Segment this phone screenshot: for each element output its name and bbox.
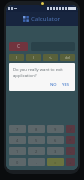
button[interactable]: 0 (9, 158, 26, 166)
staticText: C (17, 43, 21, 50)
button[interactable]: 3 (47, 147, 64, 155)
button[interactable]: 9 (47, 125, 64, 133)
staticText: Do you really want to exit application? (13, 67, 72, 79)
button[interactable]: YES (60, 81, 72, 89)
button[interactable]: 2 (28, 147, 45, 155)
button[interactable]: 4 (9, 136, 26, 144)
staticText: 9 (54, 127, 57, 132)
button[interactable]: 8 (28, 125, 45, 133)
staticText: <- (49, 55, 53, 60)
staticText: YES (62, 82, 70, 88)
staticText: 7 (16, 127, 19, 132)
button[interactable]: NO (48, 81, 59, 89)
staticText: 0 (16, 160, 19, 165)
staticText: NO (50, 82, 57, 88)
staticText: 8 (35, 127, 38, 132)
button[interactable]: <- (43, 54, 58, 61)
staticText: 2 (35, 149, 38, 154)
staticText: + (69, 160, 72, 165)
staticText: 1 (16, 149, 19, 154)
staticText: ( (16, 55, 18, 60)
button[interactable]: ) (26, 54, 41, 61)
button[interactable]: 6 (47, 136, 64, 144)
staticText: 4 (16, 138, 19, 143)
staticText: 6 (54, 138, 57, 143)
button[interactable]: ( (9, 54, 24, 61)
button[interactable]: del (60, 54, 75, 61)
staticText: ) (33, 55, 35, 60)
staticText: / (70, 127, 72, 132)
staticText: del (65, 55, 71, 60)
staticText: = (54, 160, 57, 165)
staticText: * (69, 138, 72, 143)
button[interactable]: Clear (9, 42, 28, 51)
staticText: 3 (54, 149, 57, 154)
staticText: Calculator (31, 15, 61, 23)
staticText: 5 (35, 138, 38, 143)
